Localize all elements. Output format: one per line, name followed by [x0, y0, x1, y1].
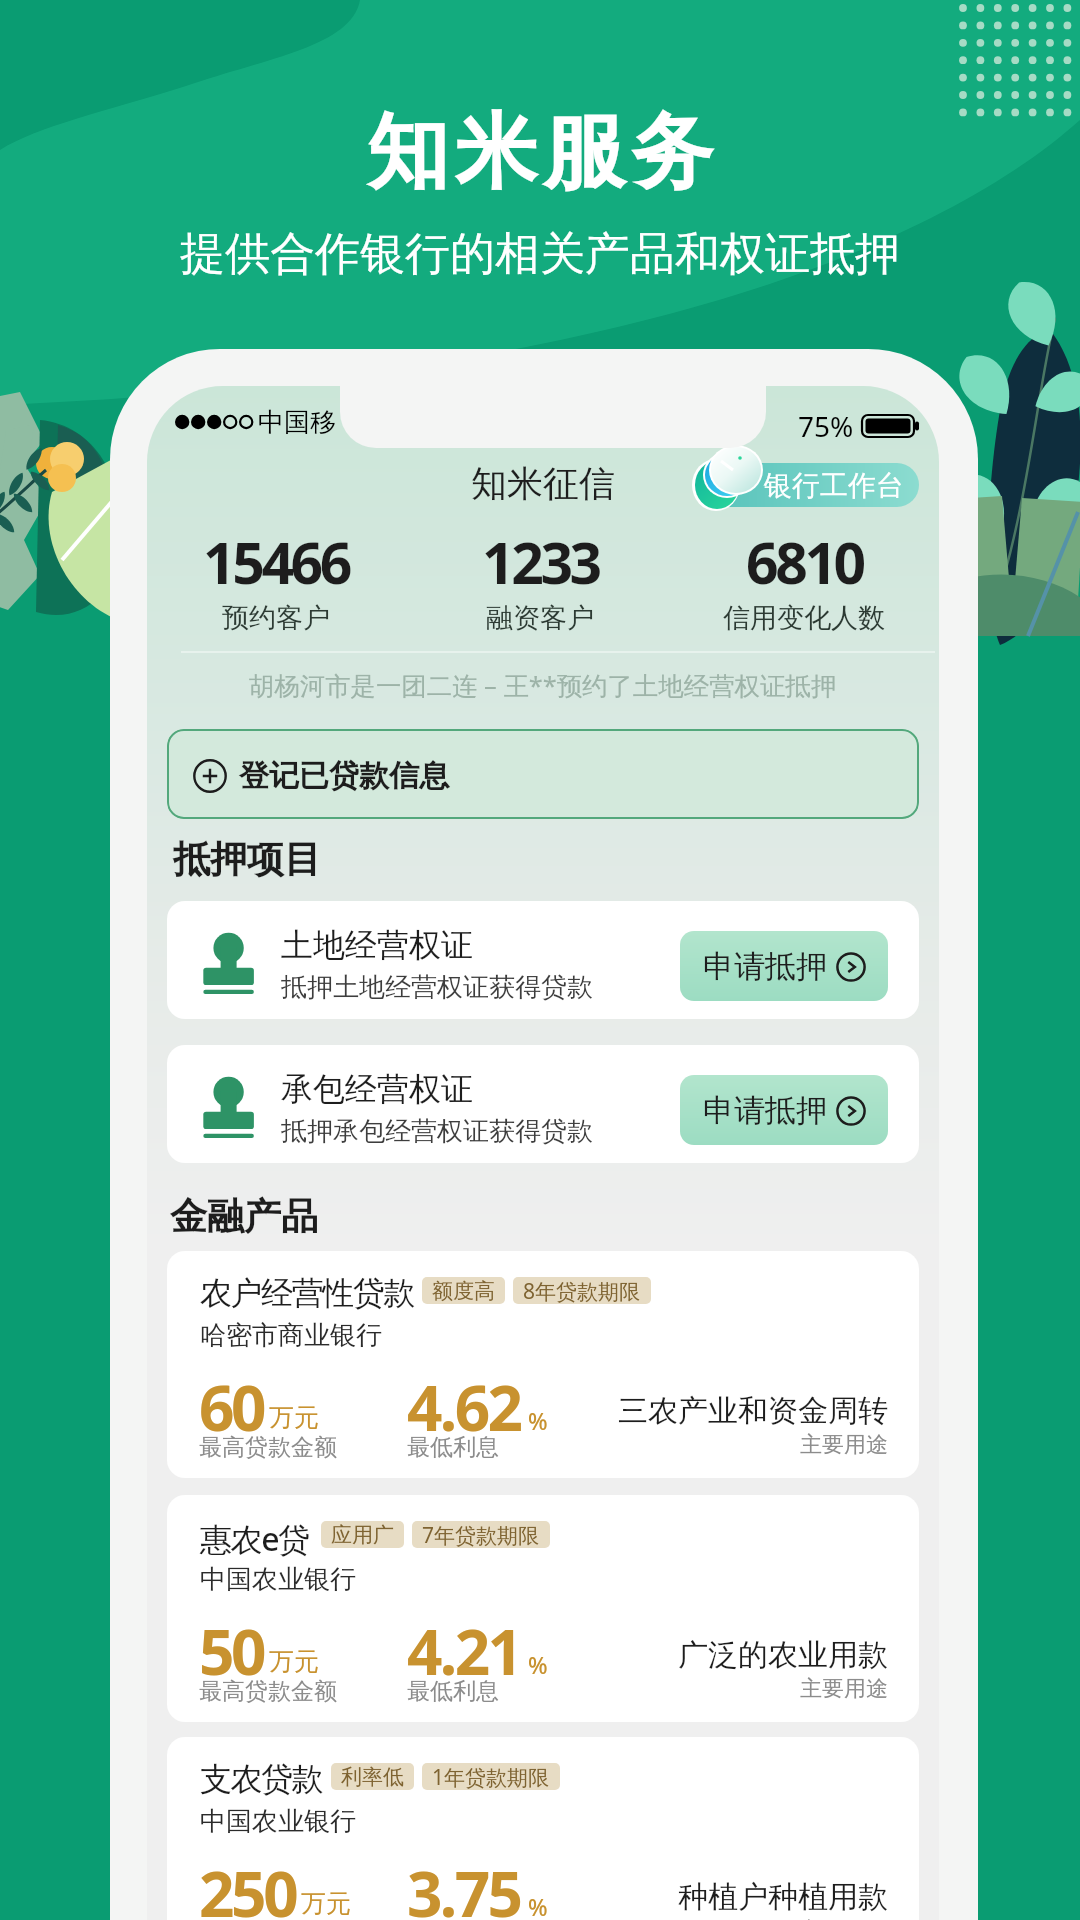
staticText: % — [528, 1649, 548, 1680]
staticText: 利率低 — [341, 1764, 404, 1790]
staticText: 知米服务 — [364, 101, 716, 204]
staticText: 最低利息 — [407, 1677, 499, 1706]
staticText: 广泛的农业用款 — [547, 1636, 888, 1674]
staticText: 8年贷款期限 — [523, 1277, 641, 1304]
staticText: 抵押承包经营权证获得贷款 — [281, 1115, 593, 1148]
button[interactable]: 农户经营性贷款 — [167, 1251, 919, 1478]
staticText: 信用变化人数 — [723, 601, 885, 635]
staticText: 3.75 — [407, 1851, 521, 1920]
staticText: 万元 — [269, 1646, 319, 1677]
staticText: 银行工作台 — [764, 468, 904, 503]
staticText: 土地经营权证 — [281, 925, 473, 965]
staticText: 预约客户 — [222, 601, 330, 635]
staticText: 种植户种植用款 — [547, 1878, 888, 1916]
button[interactable]: 申请抵押 — [680, 1075, 888, 1145]
other: 银行工作台 — [695, 448, 765, 512]
staticText: 哈密市商业银行 — [200, 1319, 382, 1352]
staticText: 支农贷款 — [200, 1759, 323, 1799]
staticText: 额度高 — [432, 1278, 495, 1304]
staticText: 最低利息 — [407, 1433, 499, 1462]
staticText: 应用广 — [331, 1522, 394, 1548]
button[interactable]: 惠农e贷 — [167, 1495, 919, 1722]
button[interactable]: 银行工作台 — [703, 463, 919, 507]
button[interactable]: 申请抵押 — [680, 931, 888, 1001]
staticText: 1233 — [482, 523, 599, 601]
staticText: 中国农业银行 — [200, 1805, 356, 1838]
staticText: 7年贷款期限 — [422, 1521, 540, 1548]
staticText: 抵押项目 — [173, 836, 321, 883]
staticText: 金融产品 — [170, 1193, 318, 1240]
staticText: 4.21 — [407, 1609, 521, 1693]
staticText: 4.62 — [407, 1365, 521, 1449]
staticText: 中国农业银行 — [200, 1563, 356, 1596]
staticText: 万元 — [269, 1402, 319, 1433]
staticText: 知米征信 — [471, 461, 615, 506]
staticText: 75% — [798, 407, 854, 445]
staticText: 6810 — [746, 523, 863, 601]
staticText: 农户经营性贷款 — [200, 1273, 415, 1313]
staticText: 主要用途 — [607, 1675, 888, 1703]
button[interactable]: 承包经营权证 — [167, 1045, 919, 1163]
staticText: 中国移 — [258, 406, 336, 439]
staticText: 50 — [199, 1609, 264, 1693]
staticText: 承包经营权证 — [281, 1069, 473, 1109]
button[interactable]: 土地经营权证 — [167, 901, 919, 1019]
staticText: 申请抵押 — [703, 1091, 827, 1130]
staticText: 登记已贷款信息 — [239, 757, 449, 795]
staticText: 融资客户 — [486, 601, 594, 635]
staticText: 最高贷款金额 — [199, 1677, 337, 1706]
staticText: 60 — [199, 1365, 264, 1449]
staticText: 申请抵押 — [703, 947, 827, 986]
staticText: 250 — [199, 1851, 296, 1920]
staticText: 主要用途 — [607, 1431, 888, 1459]
staticText: 惠农e贷 — [200, 1517, 309, 1561]
button[interactable]: 登记已贷款信息 — [167, 729, 919, 819]
staticText: 抵押土地经营权证获得贷款 — [281, 971, 593, 1004]
staticText: 最高贷款金额 — [199, 1433, 337, 1462]
staticText: 15466 — [203, 523, 350, 601]
staticText: 万元 — [301, 1888, 351, 1919]
staticText: % — [528, 1891, 548, 1920]
button[interactable]: 支农贷款 — [167, 1737, 919, 1920]
staticText: 提供合作银行的相关产品和权证抵押 — [180, 226, 900, 283]
staticText: % — [528, 1405, 548, 1436]
staticText: 胡杨河市是一团二连 – 王**预约了土地经营权证抵押 — [249, 668, 837, 703]
staticText: 三农产业和资金周转 — [547, 1392, 888, 1430]
staticText: 1年贷款期限 — [432, 1763, 550, 1790]
